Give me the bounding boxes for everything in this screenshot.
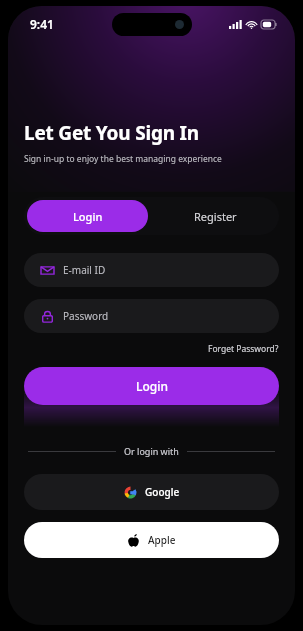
staticText: Login [73,209,103,224]
button[interactable]: Forget Password? [208,343,279,355]
staticText: Register [194,209,237,224]
button[interactable]: Register [151,197,279,235]
button[interactable]: Google logo [24,474,279,510]
button[interactable]: E-mail ID [24,253,279,287]
staticText: Apple [148,533,176,547]
button[interactable]: Login [27,200,148,232]
staticText: Sign in-up to enjoy the best managing ex… [24,153,222,165]
button[interactable]: Login [24,367,279,405]
button[interactable]: Password [24,299,279,333]
staticText: Or login with [124,445,179,457]
staticText: Let Get You Sign In [24,120,199,146]
staticText: Forget Password? [208,343,279,355]
staticText: E-mail ID [63,263,106,277]
staticText: Password [63,309,109,323]
staticText: Login [136,378,168,394]
other: Google logo [124,486,137,499]
button[interactable]: Apple logo [24,522,279,558]
staticText: 9:41 [30,16,54,32]
staticText: Google [145,485,180,499]
other: Apple logo [127,534,140,547]
